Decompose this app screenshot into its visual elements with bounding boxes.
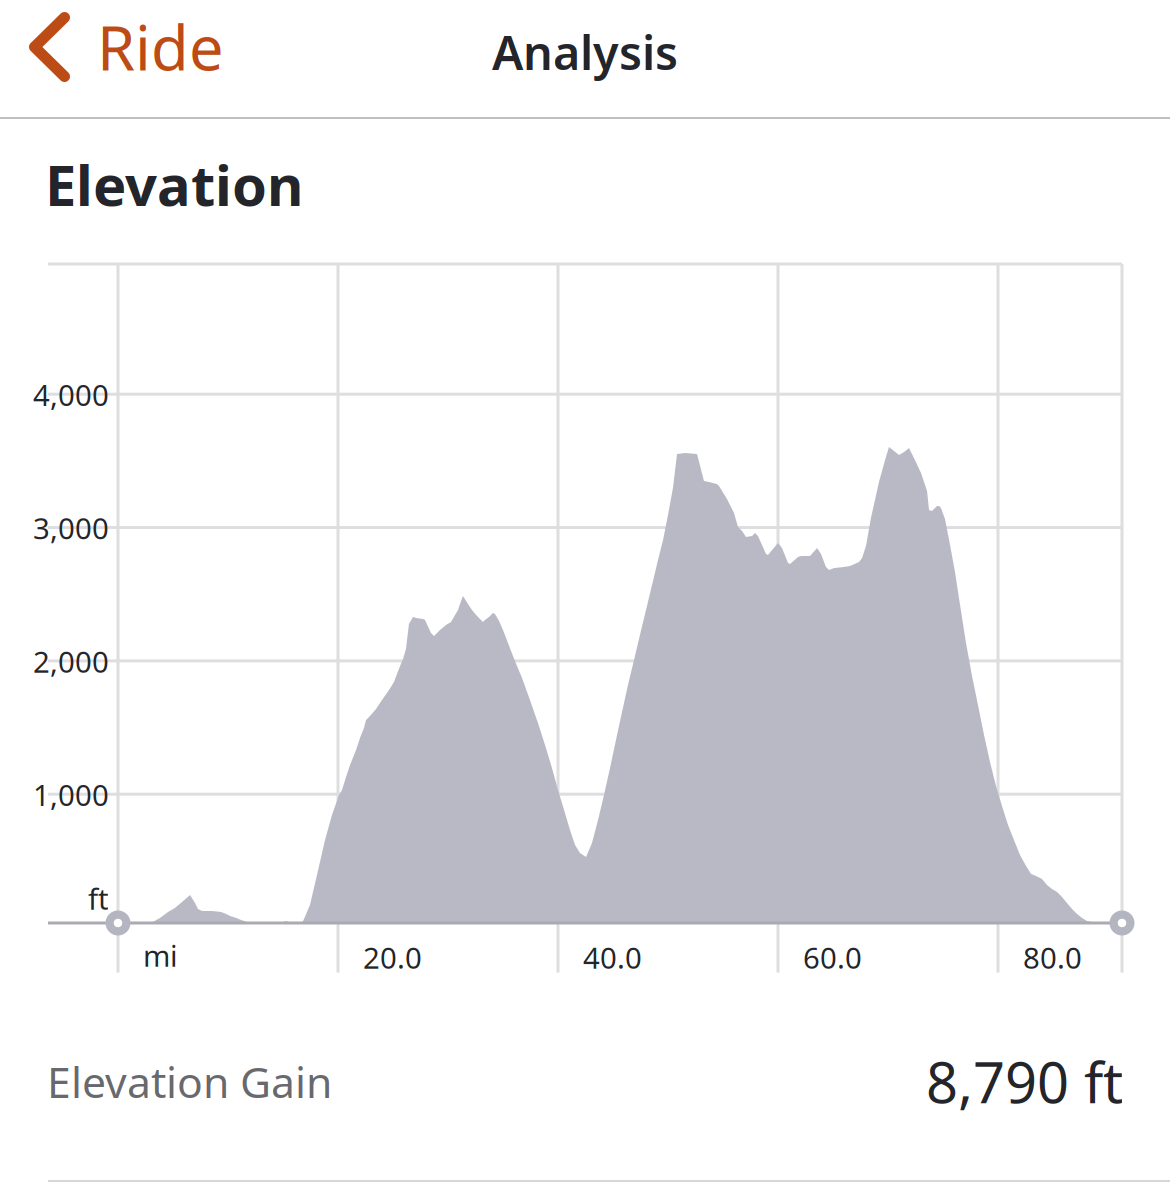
staticText: Elevation (45, 147, 303, 221)
staticText: 20.0 (363, 938, 422, 977)
staticText: 2,000 (33, 642, 109, 681)
staticText: 80.0 (1023, 938, 1082, 977)
staticText: Ride (97, 6, 224, 87)
staticText: Elevation Gain (47, 1053, 332, 1110)
staticText: ft (88, 879, 109, 918)
staticText: Analysis (492, 21, 678, 83)
staticText: 1,000 (33, 775, 109, 814)
staticText: mi (143, 936, 178, 975)
staticText: 8,790 ft (926, 1044, 1123, 1119)
staticText: 60.0 (803, 938, 862, 977)
staticText: 40.0 (583, 938, 642, 977)
button[interactable]: Back to Ride (0, 0, 250, 116)
staticText: 4,000 (33, 375, 109, 414)
staticText: 3,000 (33, 508, 109, 547)
button[interactable]: Elevation Gain (0, 1012, 1170, 1151)
